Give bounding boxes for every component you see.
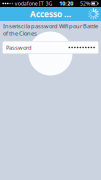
staticText: vodafone IT bbox=[15, 0, 44, 7]
staticText: Password bbox=[6, 44, 32, 51]
staticText: of the Clones bbox=[3, 29, 37, 37]
staticText: 10:20 bbox=[59, 0, 73, 7]
staticText: Inserisci la password Wifi pour Battle bbox=[3, 22, 98, 30]
staticText: 3G bbox=[46, 0, 53, 7]
staticText: 52% bbox=[80, 0, 90, 7]
staticText: Accesso … bbox=[30, 8, 71, 20]
button[interactable]: Password bbox=[2, 41, 98, 54]
